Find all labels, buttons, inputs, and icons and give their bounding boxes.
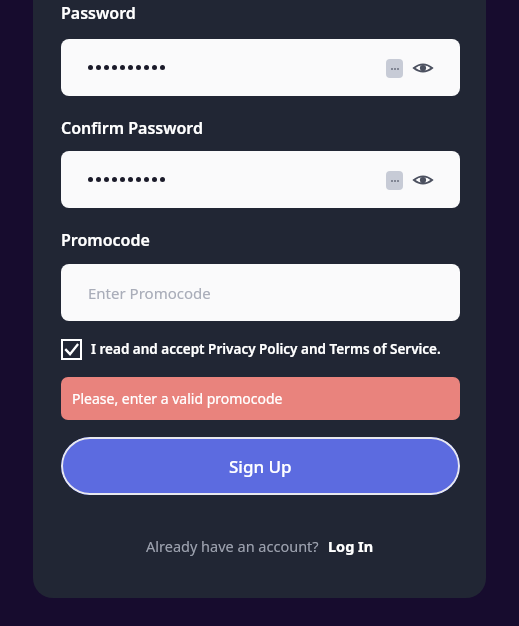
button[interactable]: I read and accept Privacy Policy and Ter… — [61, 336, 441, 362]
button[interactable]: Autofill password — [61, 39, 460, 96]
staticText: Already have an account? — [146, 536, 319, 556]
button[interactable]: Please, enter a valid promocode — [61, 377, 460, 420]
staticText: Confirm Password — [61, 117, 203, 139]
staticText: Log In — [328, 536, 374, 556]
button[interactable]: Show password — [412, 57, 434, 79]
staticText: Enter Promocode — [88, 283, 211, 303]
button[interactable]: Autofill password — [386, 59, 403, 78]
staticText: Please, enter a valid promocode — [72, 389, 283, 408]
button[interactable]: Sign Up — [61, 437, 460, 495]
staticText: Password — [61, 2, 136, 24]
staticText: Sign Up — [229, 455, 292, 478]
button[interactable]: Autofill password — [61, 151, 460, 208]
button[interactable]: Autofill password — [386, 171, 403, 190]
staticText: I read and accept Privacy Policy and Ter… — [91, 340, 441, 358]
staticText: Promocode — [61, 229, 150, 251]
button[interactable]: Show password — [412, 169, 434, 191]
button[interactable]: Enter Promocode — [61, 264, 460, 321]
button[interactable]: Log In — [328, 536, 374, 556]
